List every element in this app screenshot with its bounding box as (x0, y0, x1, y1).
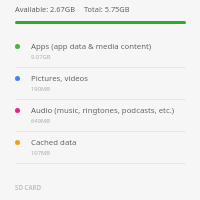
staticText: Available: 2.67GB (15, 4, 75, 14)
staticText: Audio (music, ringtones, podcasts, etc.) (31, 105, 175, 116)
staticText: 107MB (31, 149, 50, 157)
button[interactable]: Apps (app data & media content) (0, 36, 200, 67)
staticText: SD CARD (15, 183, 41, 191)
staticText: Cached data (31, 137, 77, 148)
button[interactable]: Pictures, videos (0, 68, 200, 99)
staticText: 190MB (31, 85, 50, 93)
staticText: Total: 5.75GB (84, 4, 130, 14)
button[interactable]: Audio (music, ringtones, podcasts, etc.) (0, 100, 200, 131)
button[interactable]: Cached data (0, 132, 200, 163)
staticText: 649MB (31, 117, 50, 125)
staticText: Pictures, videos (31, 73, 89, 84)
staticText: 9.07GB (31, 53, 51, 61)
staticText: Apps (app data & media content) (31, 41, 152, 52)
